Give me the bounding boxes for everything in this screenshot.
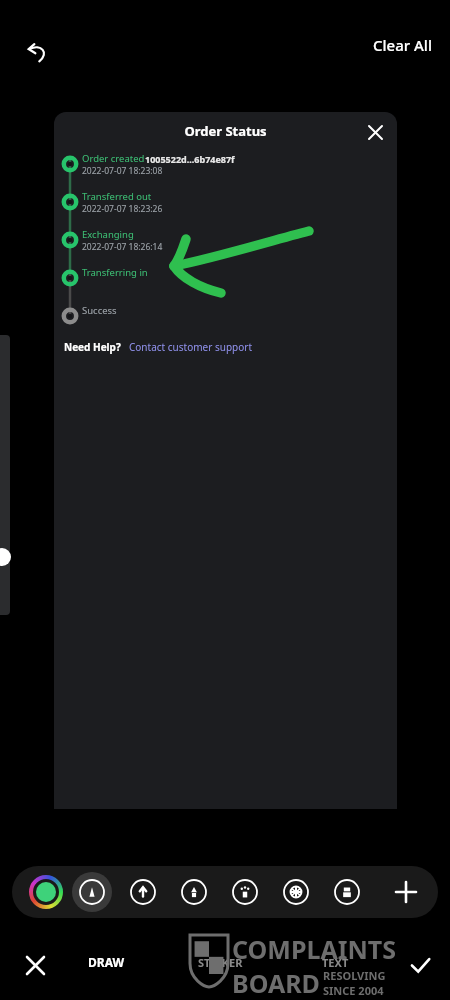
button[interactable]: Mosaic bbox=[225, 872, 265, 912]
button[interactable]: Undo bbox=[20, 36, 56, 72]
button[interactable]: Contact customer support bbox=[129, 340, 252, 354]
staticText: SINCE 2004 bbox=[323, 983, 384, 998]
staticText: BOARD bbox=[232, 966, 320, 1000]
staticText: TEXT bbox=[322, 955, 349, 970]
button[interactable]: STICKER bbox=[198, 955, 243, 970]
button[interactable]: Pen bbox=[72, 872, 112, 912]
button[interactable]: Blur bbox=[276, 872, 316, 912]
button[interactable]: TEXT bbox=[322, 955, 349, 970]
button[interactable]: Color bbox=[30, 876, 62, 908]
button[interactable]: Done bbox=[405, 950, 435, 980]
button[interactable]: Eraser bbox=[327, 872, 367, 912]
staticText: Success bbox=[82, 304, 117, 317]
button[interactable]: Add bbox=[390, 876, 422, 908]
staticText: 1005522d...6b74e87f bbox=[145, 153, 235, 165]
staticText: COMPLAINTS bbox=[232, 932, 396, 966]
button[interactable]: Close bbox=[359, 116, 391, 148]
staticText: 2022-07-07 18:23:08 bbox=[82, 165, 163, 177]
staticText: Transferred out bbox=[82, 190, 152, 203]
button[interactable]: DRAW bbox=[88, 954, 125, 970]
staticText: Exchanging bbox=[82, 228, 134, 241]
staticText: Order created bbox=[82, 152, 145, 165]
staticText: 2022-07-07 18:26:14 bbox=[82, 241, 163, 253]
staticText: 2022-07-07 18:23:26 bbox=[82, 203, 163, 215]
button[interactable]: Arrow bbox=[123, 872, 163, 912]
button[interactable]: Cancel bbox=[20, 950, 50, 980]
staticText: STICKER bbox=[198, 955, 243, 970]
staticText: Need Help? bbox=[64, 340, 121, 354]
staticText: Clear All bbox=[373, 35, 432, 55]
staticText: Transferring in bbox=[82, 266, 148, 279]
staticText: DRAW bbox=[88, 954, 125, 970]
button[interactable]: Clear All bbox=[373, 35, 432, 55]
button[interactable]: Marker bbox=[174, 872, 214, 912]
staticText: Contact customer support bbox=[129, 340, 252, 354]
staticText: RESOLVING bbox=[323, 968, 386, 983]
staticText: Order Status bbox=[184, 122, 267, 140]
